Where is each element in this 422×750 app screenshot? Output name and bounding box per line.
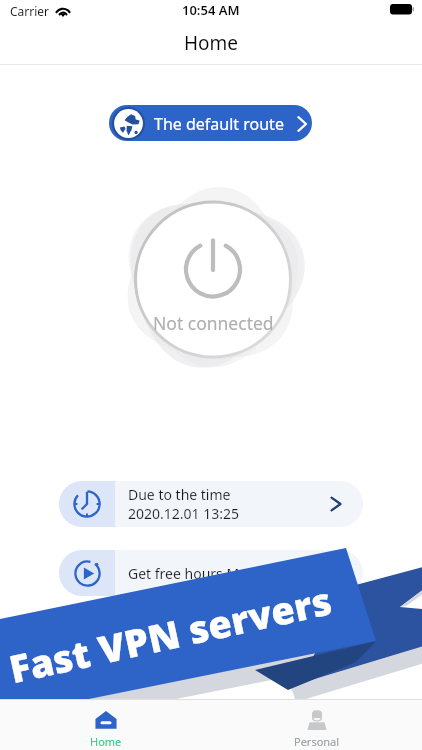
button[interactable]: The default route [109, 105, 312, 141]
button[interactable]: Not connected [113, 179, 313, 380]
staticText: Due to the time [128, 485, 231, 504]
staticText: Carrier [10, 3, 50, 19]
staticText: Home [90, 734, 122, 749]
staticText: Not connected [153, 311, 274, 335]
button[interactable]: Get free hours MAX 10 [59, 550, 363, 596]
staticText: Fast VPN servers [4, 573, 337, 694]
staticText: 2020.12.01 13:25 [128, 504, 239, 523]
staticText: 10:54 AM [182, 1, 240, 19]
staticText: Personal [294, 734, 340, 749]
staticText: Get free hours MAX 10 [128, 564, 276, 583]
button[interactable]: Home [0, 700, 211, 750]
staticText: The default route [154, 113, 284, 135]
button[interactable]: Due to the time [59, 481, 363, 527]
button[interactable]: Personal [211, 700, 422, 750]
staticText: Home [184, 30, 239, 56]
